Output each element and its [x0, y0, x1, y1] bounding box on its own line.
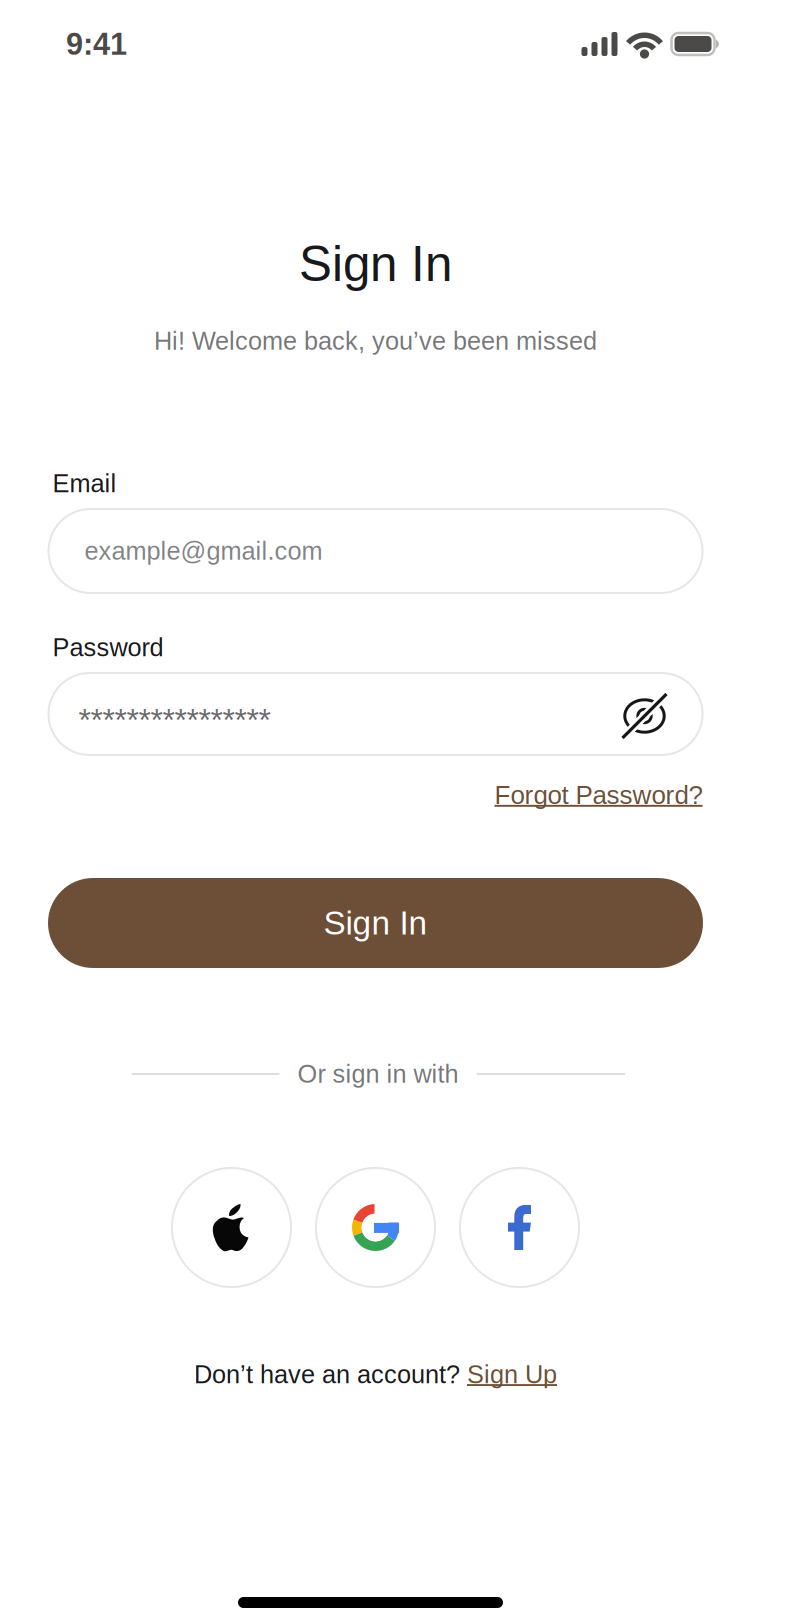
staticText: example@gmail.com — [84, 537, 322, 565]
staticText: Or sign in with — [297, 1060, 458, 1088]
staticText: Password — [52, 633, 163, 662]
button[interactable]: Sign in with Facebook — [460, 1168, 579, 1287]
button[interactable]: Forgot Password? — [494, 778, 702, 812]
staticText: 9:41 — [66, 27, 127, 61]
staticText: Forgot Password? — [494, 780, 702, 809]
staticText: Sign Up — [467, 1360, 557, 1389]
button[interactable]: Sign in with Google — [316, 1168, 435, 1287]
staticText: Hi! Welcome back, you’ve been missed — [154, 327, 597, 355]
staticText: Email — [52, 469, 116, 498]
button[interactable]: Sign In — [48, 878, 703, 968]
button[interactable]: Sign Up — [467, 1360, 557, 1389]
button[interactable]: Sign in with Apple — [172, 1168, 291, 1287]
staticText: Sign In — [323, 904, 427, 942]
button[interactable]: Show password — [618, 691, 670, 737]
staticText: Sign In — [299, 236, 452, 291]
staticText: Don’t have an account? — [194, 1360, 467, 1389]
staticText: **************** — [78, 702, 270, 738]
